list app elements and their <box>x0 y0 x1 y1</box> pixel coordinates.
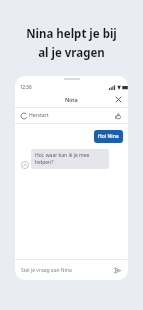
button[interactable]: Herstart <box>20 111 50 120</box>
button[interactable]: Verstuur <box>112 265 122 275</box>
button[interactable]: Hoi Nina <box>94 130 123 143</box>
staticText: Stel je vraag aan Nina <box>21 267 72 274</box>
button[interactable]: Stel je vraag aan Nina <box>15 260 128 280</box>
staticText: Nina <box>65 96 78 103</box>
staticText: Nina helpt je bij <box>26 26 117 42</box>
button[interactable]: Duim omhoog <box>113 111 123 121</box>
staticText: Herstart <box>29 112 49 119</box>
button[interactable]: Sluiten <box>113 94 124 105</box>
staticText: Hoi, waar kan ik je mee helpen? <box>35 152 105 166</box>
staticText: Hoi Nina <box>98 133 119 140</box>
button[interactable]: Hoi, waar kan ik je mee helpen? <box>31 149 109 169</box>
staticText: 12:30 <box>20 84 32 90</box>
staticText: al je vragen <box>38 45 105 61</box>
